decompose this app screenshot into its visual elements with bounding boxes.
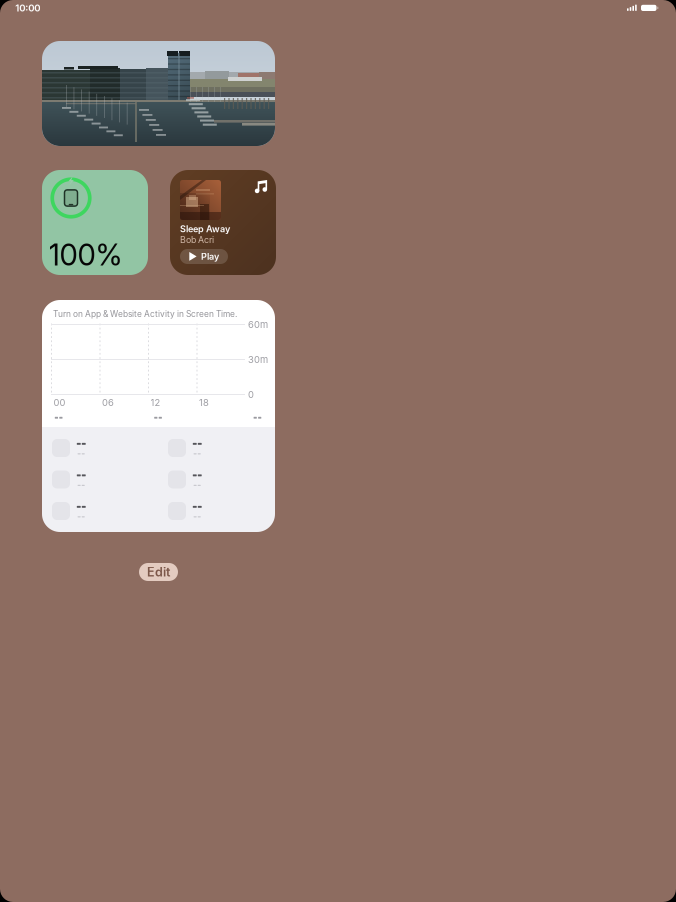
staticText: Edit: [147, 564, 170, 580]
staticText: Play: [201, 251, 219, 262]
staticText: Sleep Away: [180, 223, 230, 234]
button[interactable]: Battery 100 percent: [42, 170, 148, 275]
button[interactable]: Screen Time: [42, 300, 275, 532]
staticText: 18: [199, 397, 209, 408]
staticText: Bob Acri: [180, 234, 214, 245]
staticText: 30m: [248, 354, 268, 365]
staticText: 10:00: [15, 2, 40, 14]
staticText: 60m: [248, 319, 268, 330]
button[interactable]: Photos: [42, 41, 275, 146]
button[interactable]: Edit: [139, 563, 178, 581]
staticText: 0: [248, 389, 254, 400]
staticText: 100%: [48, 237, 122, 272]
button[interactable]: Now playing Sleep Away by Bob Acri: [170, 170, 276, 275]
staticText: 12: [150, 397, 160, 408]
staticText: Turn on App & Website Activity in Screen…: [53, 309, 237, 319]
staticText: 06: [102, 397, 114, 408]
staticText: 00: [53, 397, 65, 408]
